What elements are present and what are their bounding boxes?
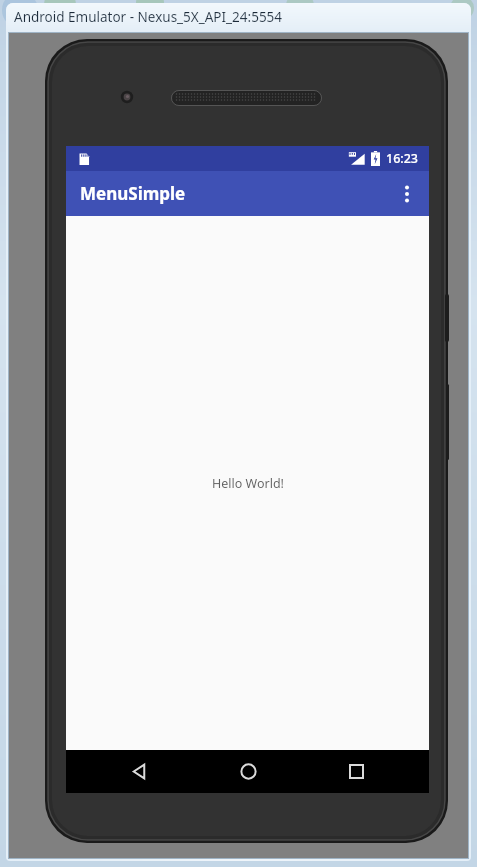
staticText: MenuSimple (80, 182, 186, 205)
staticText: 16:23 (386, 150, 419, 167)
button[interactable]: Recent apps (320, 750, 392, 793)
button[interactable]: Back (103, 750, 175, 793)
staticText: Android Emulator - Nexus_5X_API_24:5554 (14, 8, 283, 26)
button[interactable]: Home (212, 750, 284, 793)
staticText: Hello World! (212, 475, 284, 492)
button[interactable]: More options (385, 172, 429, 216)
